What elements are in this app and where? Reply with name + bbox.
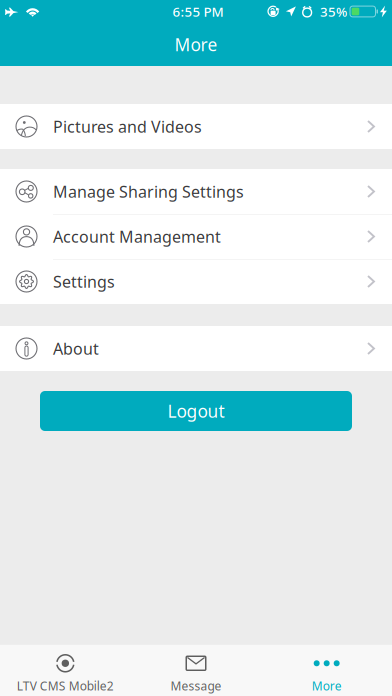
button[interactable]: LTV CMS Mobile2: [0, 645, 131, 696]
staticText: Logout: [167, 399, 224, 422]
staticText: Message: [170, 678, 221, 694]
staticText: LTV CMS Mobile2: [17, 678, 114, 694]
staticText: Manage Sharing Settings: [53, 181, 244, 202]
button[interactable]: Manage Sharing Settings: [0, 169, 392, 214]
staticText: 35%: [320, 3, 347, 20]
button[interactable]: About: [0, 326, 392, 371]
staticText: About: [53, 338, 99, 359]
staticText: Account Management: [53, 226, 221, 247]
staticText: More: [174, 33, 217, 56]
button[interactable]: Pictures and Videos: [0, 104, 392, 149]
button[interactable]: Logout: [40, 391, 352, 431]
staticText: More: [312, 678, 342, 694]
button[interactable]: Message: [131, 645, 261, 696]
button[interactable]: Settings: [0, 259, 392, 304]
button[interactable]: Account Management: [0, 214, 392, 259]
staticText: Pictures and Videos: [53, 116, 202, 137]
staticText: 6:55 PM: [172, 3, 223, 20]
button[interactable]: More: [261, 645, 392, 696]
staticText: Settings: [53, 271, 115, 292]
